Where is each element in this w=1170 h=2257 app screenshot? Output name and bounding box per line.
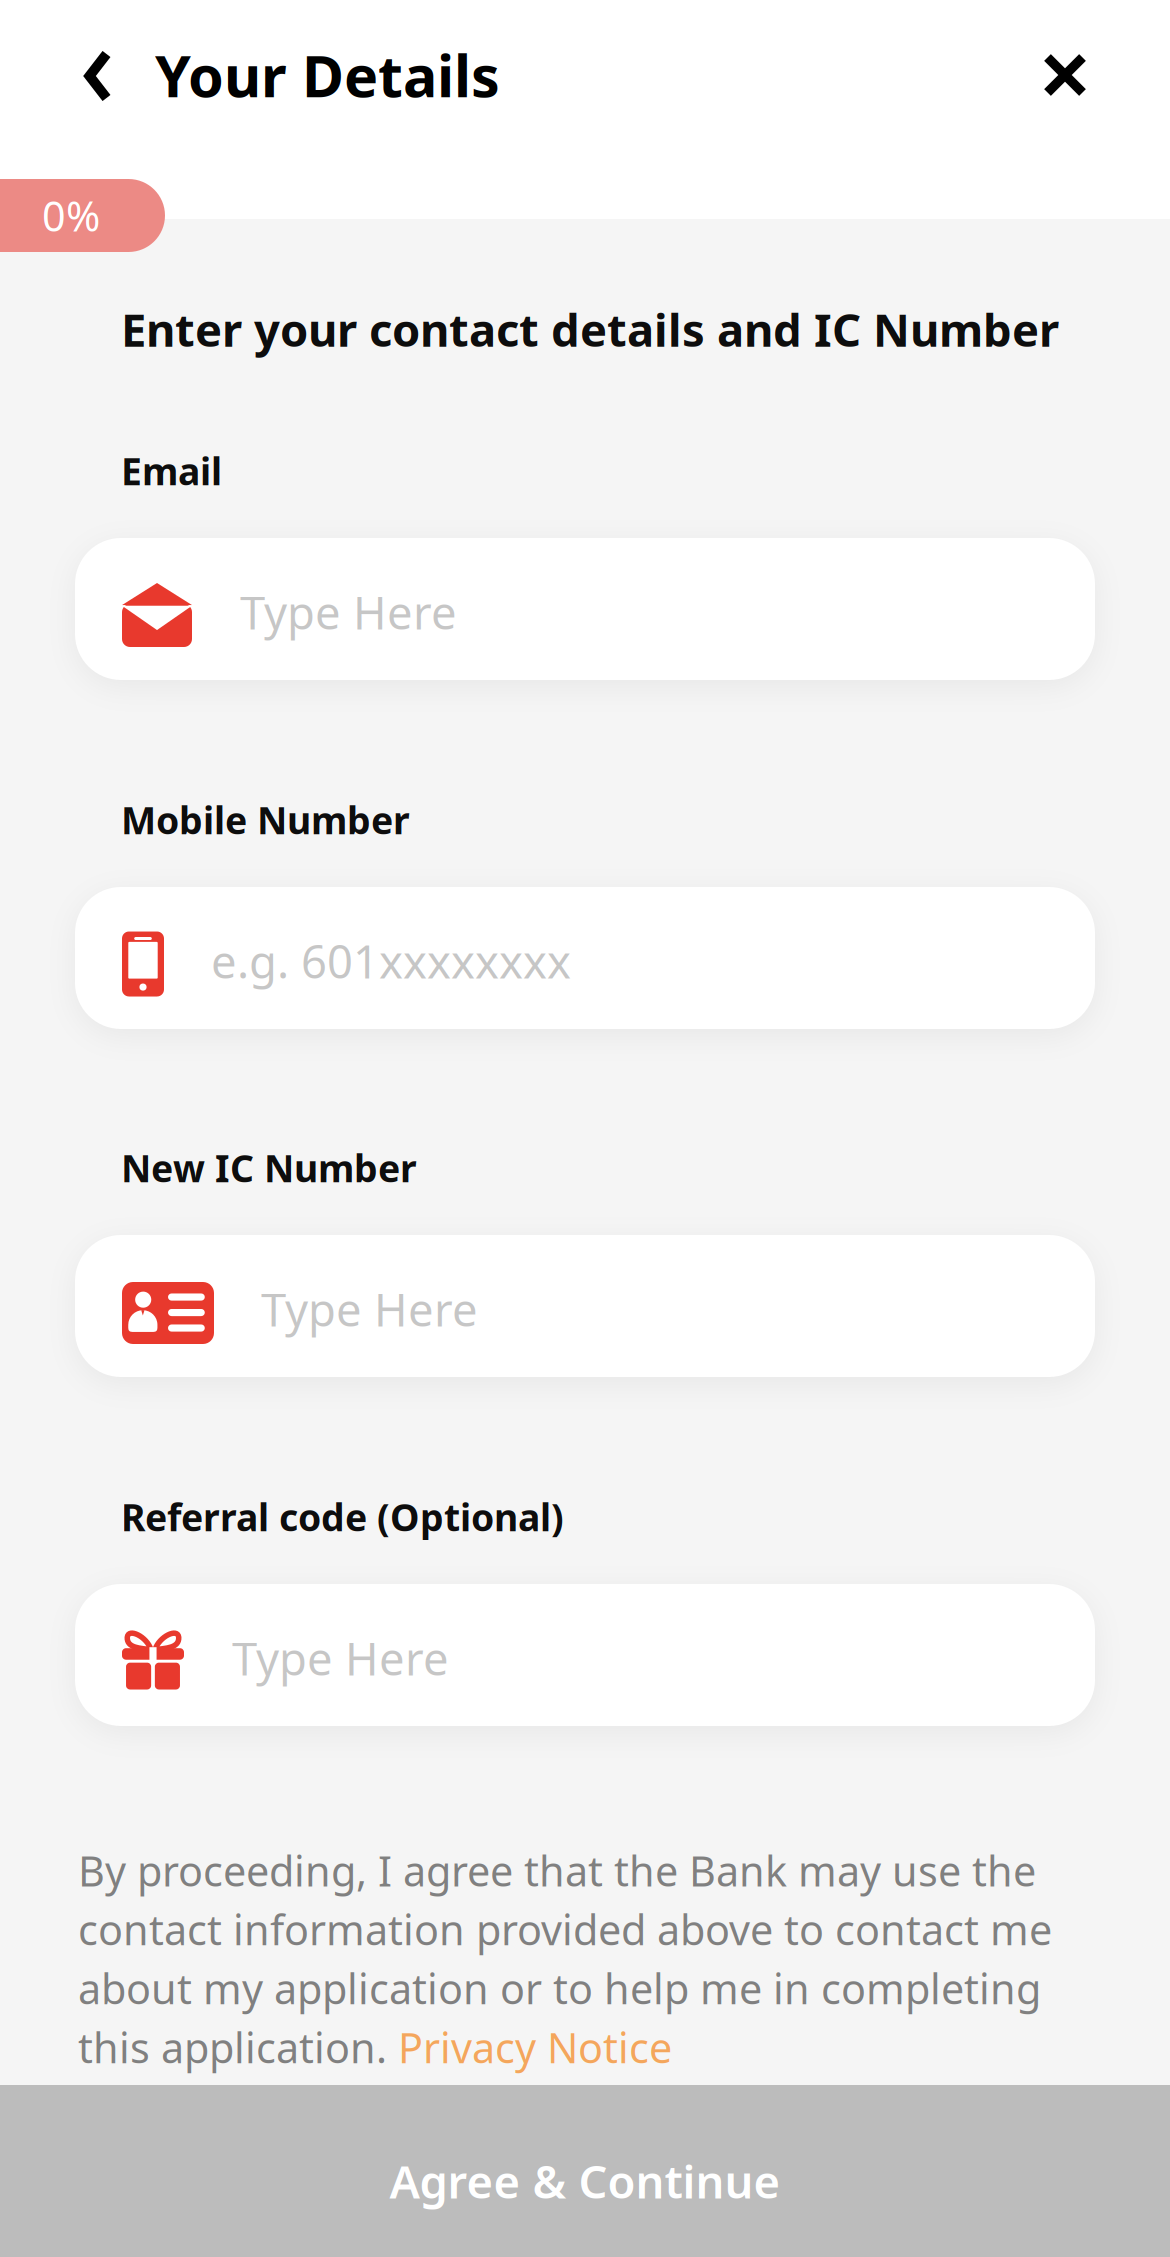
button[interactable]: Type Here <box>75 1584 1095 1726</box>
staticText: Type Here <box>232 1628 449 1688</box>
staticText: about my application or to help me in co… <box>78 1961 1041 2016</box>
staticText: 0% <box>42 188 100 243</box>
staticText: Your Details <box>155 37 500 113</box>
staticText: contact information provided above to co… <box>78 1902 1052 1957</box>
staticText: Agree & Continue <box>389 2151 780 2211</box>
staticText: By proceeding, I agree that the Bank may… <box>78 1843 1036 1898</box>
button[interactable]: Back <box>43 21 153 131</box>
staticText: Type Here <box>261 1279 478 1339</box>
staticText: Enter your contact details and IC Number <box>121 299 1059 359</box>
staticText: Referral code (Optional) <box>121 1492 564 1542</box>
button[interactable]: Privacy Notice <box>398 2020 672 2075</box>
staticText: e.g. 601xxxxxxxx <box>211 931 571 991</box>
staticText: New IC Number <box>121 1143 417 1193</box>
staticText: Mobile Number <box>121 795 410 845</box>
staticText: Privacy Notice <box>398 2020 672 2075</box>
button[interactable]: Agree & Continue <box>0 2085 1170 2257</box>
button[interactable]: Close <box>1010 20 1120 130</box>
staticText: Email <box>121 446 222 496</box>
button[interactable]: Type Here <box>75 1235 1095 1377</box>
button[interactable]: e.g. 601xxxxxxxx <box>75 887 1095 1029</box>
staticText: Type Here <box>240 582 457 642</box>
staticText: this application. <box>78 2020 398 2075</box>
button[interactable]: Type Here <box>75 538 1095 680</box>
